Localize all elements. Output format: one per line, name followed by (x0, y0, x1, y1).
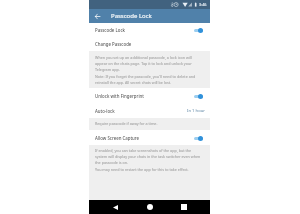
staticText: Unlock with Fingerprint (95, 93, 144, 99)
button[interactable]: Auto-lock (89, 103, 210, 118)
button[interactable]: Back (89, 9, 106, 23)
staticText: Require passcode if away for a time. (95, 121, 158, 126)
staticText: When you set up an additional passcode, … (95, 55, 192, 72)
staticText: If enabled, you can take screenshots of … (95, 148, 201, 165)
staticText: In 1 hour (187, 108, 206, 114)
staticText: Passcode Lock (95, 27, 125, 33)
button[interactable]: Allow Screen Capture (89, 130, 210, 145)
staticText: Note: If you forget the passcode, you'll… (95, 74, 196, 85)
staticText: Allow Screen Capture (95, 135, 140, 141)
button[interactable]: Change Passcode (89, 37, 210, 51)
staticText: You may need to restart the app for this… (95, 167, 189, 172)
button[interactable]: Passcode Lock (89, 23, 210, 37)
button[interactable]: Home (141, 200, 158, 214)
button[interactable]: Unlock with Fingerprint (89, 88, 210, 103)
button[interactable]: Back (107, 200, 124, 214)
staticText: Passcode Lock (111, 12, 152, 20)
staticText: Auto-lock (95, 108, 115, 114)
button[interactable]: Recents (175, 200, 192, 214)
staticText: Change Passcode (95, 41, 132, 47)
staticText: 3:46 (199, 2, 207, 7)
